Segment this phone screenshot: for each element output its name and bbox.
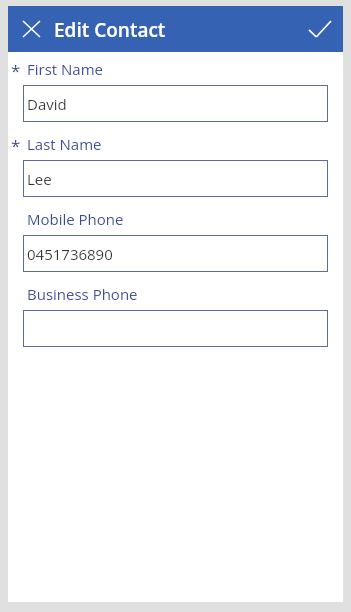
staticText: Mobile Phone <box>27 209 124 229</box>
button[interactable]: Save contact <box>298 6 342 52</box>
button[interactable]: 0451736890 <box>23 235 328 272</box>
button[interactable]: Lee <box>23 160 328 197</box>
button[interactable] <box>23 310 328 347</box>
staticText: * <box>11 59 21 82</box>
staticText: 0451736890 <box>27 244 113 264</box>
staticText: * <box>11 134 21 157</box>
button[interactable]: David <box>23 85 328 122</box>
staticText: David <box>27 94 67 114</box>
staticText: Lee <box>27 169 52 189</box>
staticText: Business Phone <box>27 284 138 304</box>
button[interactable]: Close <box>12 6 50 52</box>
staticText: First Name <box>27 59 103 79</box>
staticText: Last Name <box>27 134 102 154</box>
staticText: Edit Contact <box>54 17 166 43</box>
